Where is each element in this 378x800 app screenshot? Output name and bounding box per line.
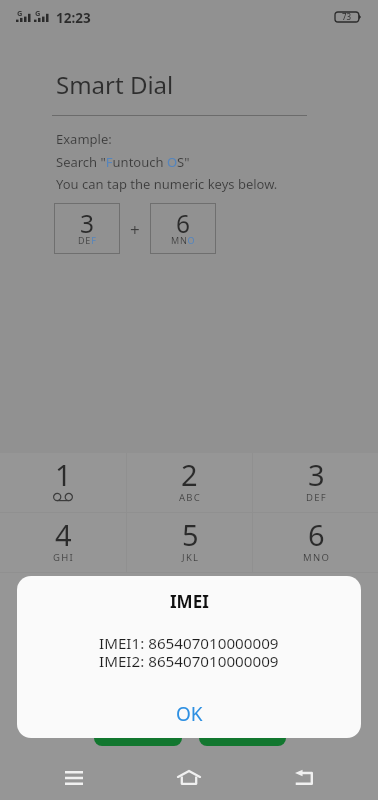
staticText: 4 (55, 515, 72, 554)
staticText: Search "Funtouch OS" (56, 153, 190, 171)
staticText: IMEI (170, 590, 209, 613)
staticText: DEF (78, 234, 97, 246)
staticText: 3 (80, 207, 95, 240)
staticText: G (17, 8, 23, 18)
staticText: 6 (308, 515, 325, 554)
staticText: Example: (56, 130, 112, 148)
button[interactable]: 3 (253, 453, 378, 512)
button[interactable]: 2 (127, 453, 252, 512)
button[interactable]: 6 (253, 513, 378, 572)
button[interactable]: Back (272, 755, 336, 800)
staticText: MNO (171, 234, 196, 246)
staticText: IMEI2: 865407010000009 (99, 651, 279, 672)
staticText: + (130, 218, 140, 241)
button[interactable]: 6 (150, 203, 216, 254)
staticText: 73 (342, 11, 352, 22)
staticText: Smart Dial (56, 68, 174, 101)
staticText: IMEI1: 865407010000009 (99, 633, 279, 654)
staticText: You can tap the numeric keys below. (56, 175, 278, 193)
staticText: G (35, 8, 41, 18)
staticText: 3 (308, 455, 325, 494)
button[interactable]: Call with SIM 1 (94, 702, 182, 746)
staticText: 2 (181, 455, 198, 494)
button[interactable]: 1 (0, 453, 126, 512)
staticText: ABC (179, 491, 202, 504)
staticText: JKL (182, 551, 200, 564)
staticText: 5 (182, 515, 199, 554)
staticText: DEF (306, 491, 328, 504)
button[interactable]: 3 (54, 203, 120, 254)
staticText: 12:23 (56, 9, 91, 27)
staticText: GHI (53, 551, 75, 564)
button[interactable]: Home (157, 755, 221, 800)
button[interactable]: 5 (127, 513, 252, 572)
staticText: 1 (55, 455, 72, 494)
staticText: MNO (303, 551, 331, 564)
button[interactable]: Call with SIM 2 (199, 702, 286, 746)
button[interactable]: 4 (0, 513, 126, 572)
staticText: 6 (176, 207, 191, 240)
staticText: OK (176, 701, 203, 727)
button[interactable]: Recent apps (42, 755, 106, 800)
button[interactable]: OK (144, 696, 234, 732)
